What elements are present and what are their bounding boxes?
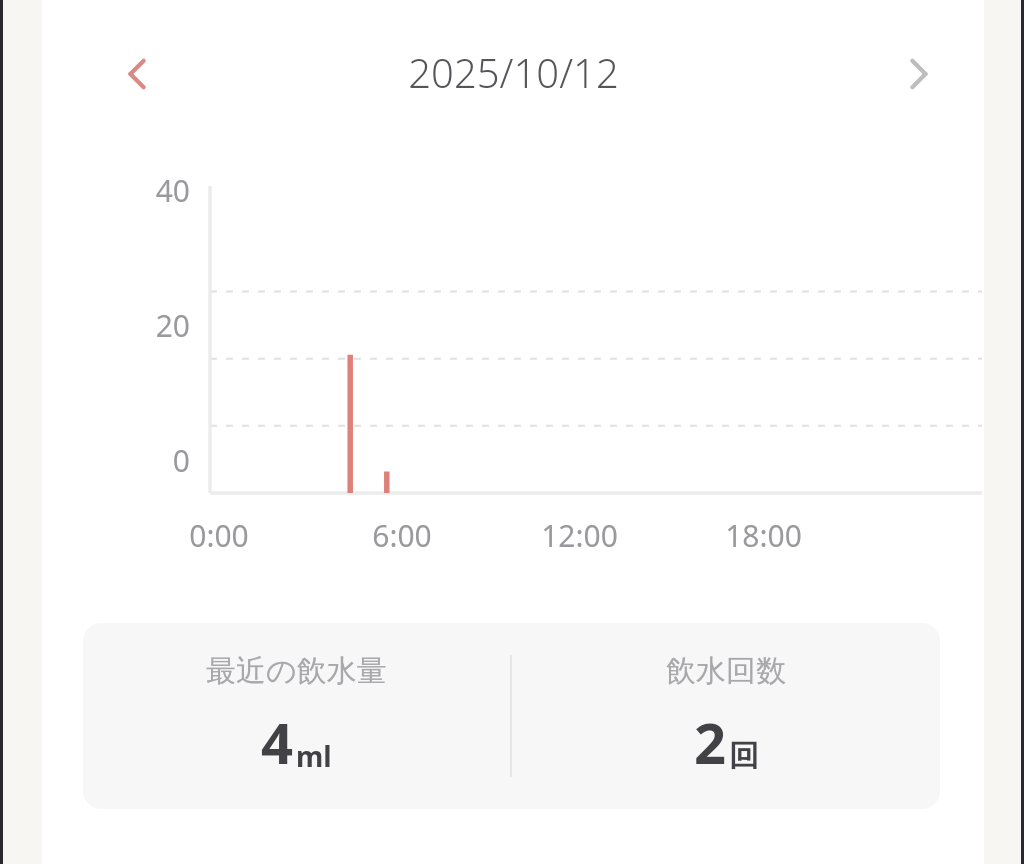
button[interactable]: 最近の飲水量 bbox=[83, 623, 940, 809]
staticText: ml bbox=[296, 737, 332, 775]
staticText: 40 bbox=[155, 170, 190, 211]
staticText: 2025/10/12 bbox=[408, 45, 619, 99]
staticText: 20 bbox=[155, 305, 190, 346]
staticText: 0:00 bbox=[189, 515, 249, 556]
staticText: 4 bbox=[261, 704, 294, 780]
staticText: 2 bbox=[694, 704, 727, 780]
staticText: 12:00 bbox=[541, 515, 618, 556]
staticText: 飲水回数 bbox=[666, 652, 786, 690]
staticText: 0 bbox=[172, 440, 190, 481]
button[interactable]: 最近の飲水量 bbox=[83, 623, 510, 809]
staticText: 最近の飲水量 bbox=[206, 652, 387, 690]
button[interactable]: 飲水回数 bbox=[512, 623, 940, 809]
staticText: 回 bbox=[729, 737, 759, 775]
staticText: 18:00 bbox=[725, 515, 802, 556]
staticText: 6:00 bbox=[372, 515, 432, 556]
button[interactable]: Next day bbox=[878, 37, 952, 111]
button[interactable]: Previous day bbox=[104, 37, 178, 111]
